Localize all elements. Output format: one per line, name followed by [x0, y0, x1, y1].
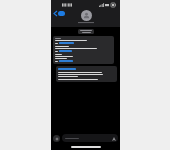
button[interactable]: Send — [111, 136, 116, 141]
button[interactable]: Back — [53, 10, 66, 17]
button[interactable] — [56, 66, 117, 82]
button[interactable] — [53, 36, 114, 64]
button[interactable]: Attach — [53, 135, 60, 142]
button[interactable] — [78, 10, 94, 24]
button[interactable]: Send — [62, 134, 118, 142]
